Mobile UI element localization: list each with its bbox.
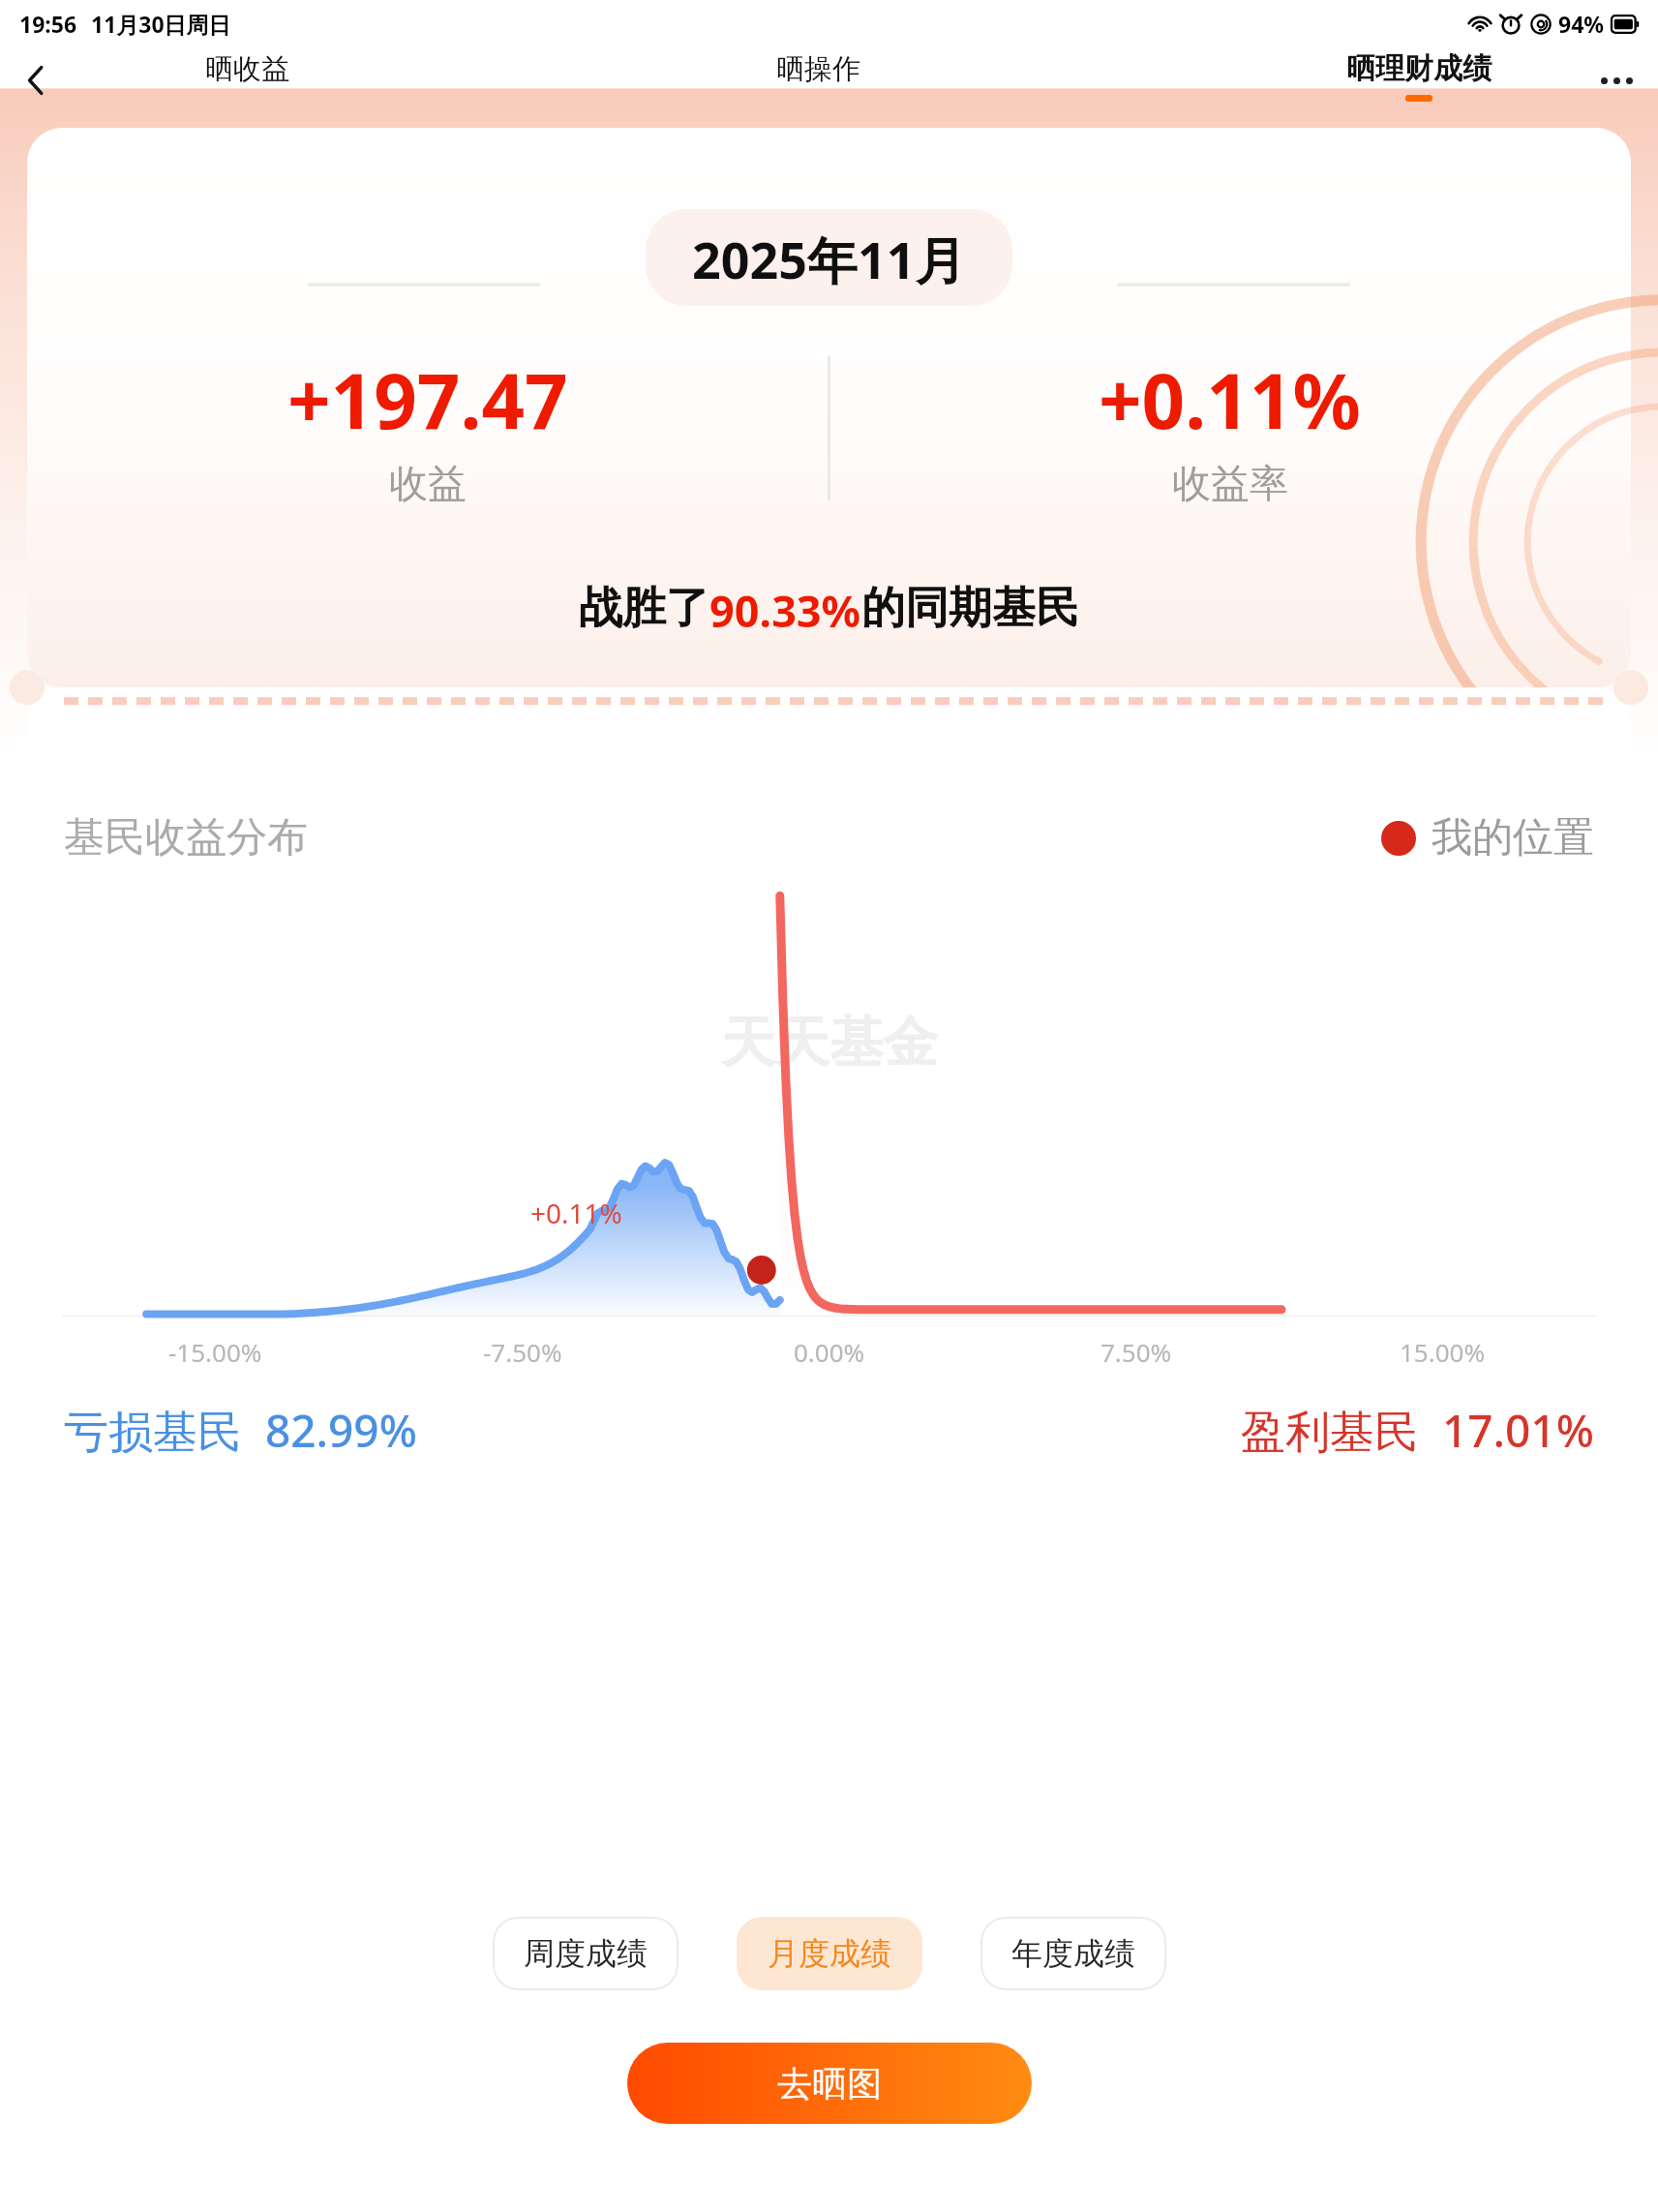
staticText: 月度成绩 <box>768 1934 891 1973</box>
staticText: 天天基金 <box>721 1009 938 1077</box>
staticText: +197.47 <box>287 348 568 451</box>
staticText: 周度成绩 <box>524 1934 648 1973</box>
button[interactable]: 周度成绩 <box>493 1917 678 1990</box>
button[interactable]: 年度成绩 <box>980 1917 1166 1990</box>
staticText: 7.50% <box>1100 1335 1172 1369</box>
staticText: 晒收益 <box>205 51 289 87</box>
button[interactable]: 去晒图 <box>627 2043 1032 2124</box>
button[interactable]: 晒收益 <box>194 47 301 106</box>
staticText: +0.11% <box>1099 348 1361 451</box>
staticText: 亏损基民 82.99% <box>64 1400 417 1461</box>
staticText: 晒操作 <box>776 51 860 87</box>
staticText: 盈利基民 17.01% <box>1241 1400 1594 1461</box>
staticText: 战胜了 <box>579 581 709 636</box>
button[interactable]: 晒操作 <box>765 47 872 106</box>
staticText: 90.33% <box>709 581 861 640</box>
staticText: 收益 <box>389 459 467 507</box>
staticText: 2025年11月 <box>692 225 966 290</box>
staticText: 收益率 <box>1172 459 1288 507</box>
staticText: -7.50% <box>483 1335 562 1369</box>
button[interactable]: 2025年11月 <box>646 209 1012 306</box>
staticText: 年度成绩 <box>1011 1934 1135 1973</box>
button[interactable]: More options <box>1588 52 1644 108</box>
staticText: +0.11% <box>530 1195 622 1231</box>
button[interactable]: 月度成绩 <box>737 1917 922 1990</box>
button[interactable]: +0.11% <box>829 348 1631 507</box>
button[interactable]: Back <box>8 52 64 108</box>
staticText: 基民收益分布 <box>64 812 308 864</box>
staticText: 的同期基民 <box>861 581 1079 636</box>
button[interactable]: +197.47 <box>27 348 829 507</box>
staticText: 晒理财成绩 <box>1346 50 1492 87</box>
staticText: 去晒图 <box>777 2062 882 2106</box>
button[interactable]: 晒理财成绩 <box>1335 46 1503 106</box>
staticText: 11月30日周日 <box>91 9 231 39</box>
staticText: 94% <box>1558 9 1605 39</box>
staticText: 0.00% <box>794 1335 865 1369</box>
staticText: 19:56 <box>19 9 77 39</box>
staticText: 15.00% <box>1400 1335 1486 1369</box>
staticText: 我的位置 <box>1432 812 1594 864</box>
staticText: -15.00% <box>168 1335 262 1369</box>
